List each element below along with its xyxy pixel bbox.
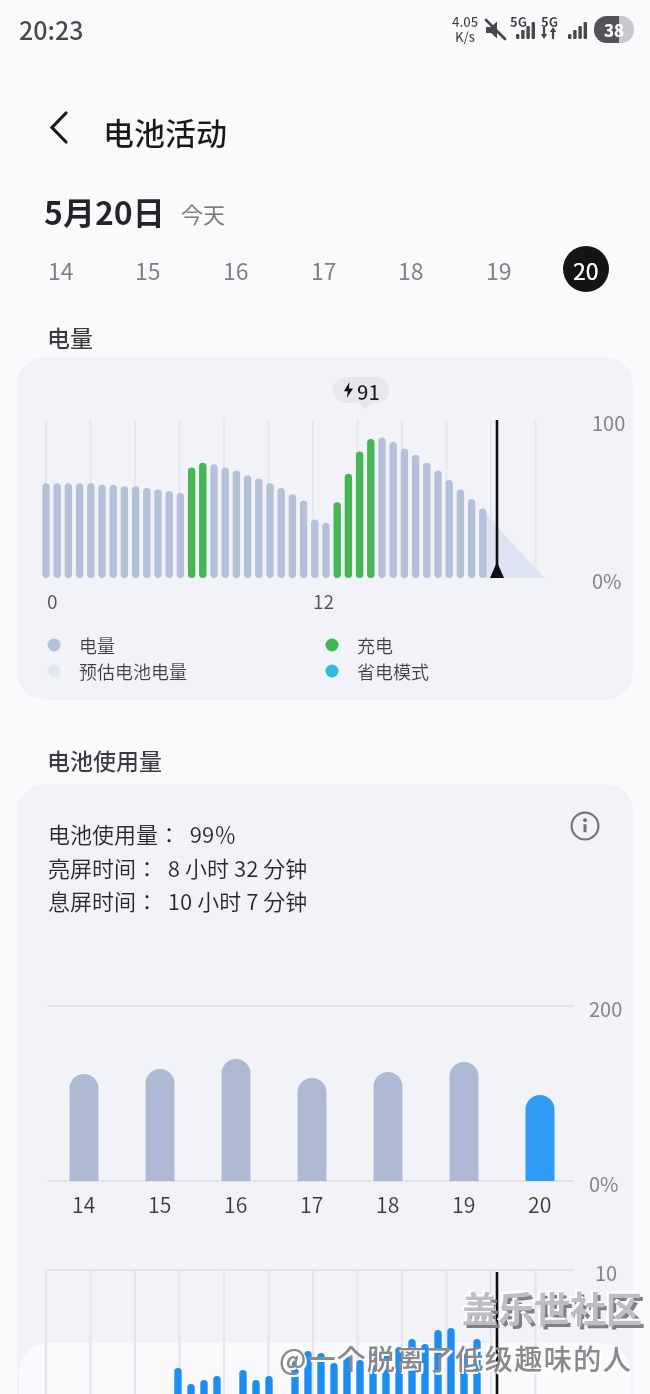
staticText: 电池使用量 [47,743,162,776]
button[interactable]: 20 [563,246,609,292]
staticText: 16 [224,1189,248,1219]
staticText: 5月20日 [44,188,165,234]
staticText: 盖乐世社区 [462,1281,643,1333]
staticText: 16 [223,253,249,286]
staticText: 200 [589,994,623,1023]
staticText: @一个脱离了低级趣味的人 [279,1338,633,1379]
staticText: 18 [398,253,424,286]
button[interactable] [571,812,599,840]
staticText: 20:23 [19,11,84,47]
staticText: 17 [300,1189,324,1219]
staticText: 19 [452,1189,476,1219]
staticText: 亮屏时间： 8 小时 32 分钟 [48,851,308,883]
staticText: 12 [313,587,335,615]
staticText: 10 [595,1258,618,1287]
button[interactable]: 15 [118,246,178,292]
staticText: 18 [376,1189,400,1219]
staticText: 0% [589,1169,619,1198]
staticText: 15 [135,253,161,286]
staticText: 电量 [47,320,93,353]
staticText: 20 [573,253,599,286]
staticText: 14 [48,253,74,286]
staticText: 息屏时间： 10 小时 7 分钟 [48,884,308,916]
staticText: K/s [455,27,475,46]
staticText: 5G [510,12,527,31]
staticText: 17 [311,253,337,286]
staticText: 盖乐世社区 [465,1284,646,1336]
button[interactable]: 19 [469,246,529,292]
staticText: 19 [486,253,512,286]
staticText: 省电模式 [357,658,429,684]
button[interactable] [50,110,72,146]
staticText: 电量 [79,632,115,658]
button[interactable]: 14 [31,246,91,292]
staticText: 14 [72,1189,96,1219]
staticText: 91 [357,377,380,403]
button[interactable]: 17 [294,246,354,292]
staticText: 盖乐世社区 [460,1279,641,1331]
staticText: @一个脱离了低级趣味的人 [281,1340,635,1381]
staticText: 预估电池电量 [79,658,187,684]
staticText: 100 [592,408,626,437]
staticText: 20 [528,1189,552,1219]
staticText: 今天 [181,197,226,229]
staticText: 4.05 [452,12,479,31]
staticText: 充电 [357,632,393,658]
staticText: 电池使用量： 99％ [48,817,237,849]
staticText: 5G [541,12,558,31]
staticText: 15 [148,1189,172,1219]
staticText: 电池活动 [103,109,227,154]
staticText: 38 [604,17,625,42]
staticText: 0% [592,566,622,595]
button[interactable]: 18 [381,246,441,292]
button[interactable]: 16 [206,246,266,292]
staticText: 0 [47,587,58,615]
